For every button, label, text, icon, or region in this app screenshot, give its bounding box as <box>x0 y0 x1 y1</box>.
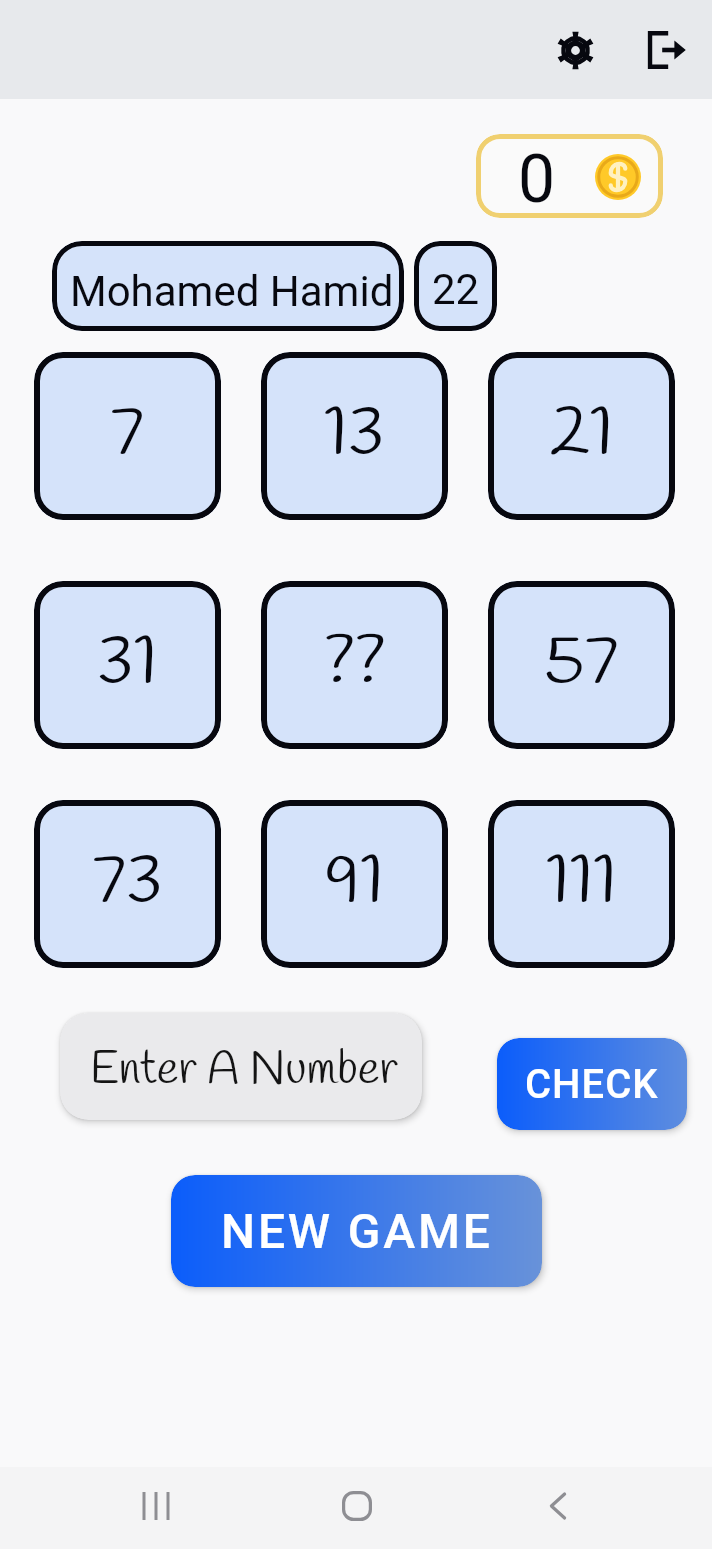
button[interactable]: Back <box>516 1464 600 1548</box>
button[interactable]: 21 <box>488 352 675 520</box>
staticText: ?? <box>324 618 386 711</box>
button[interactable]: 31 <box>34 581 221 749</box>
staticText: 13 <box>324 389 385 482</box>
button[interactable]: Enter A Number <box>60 1013 422 1120</box>
staticText: 7 <box>110 389 145 482</box>
staticText: 0 <box>518 141 556 218</box>
button[interactable]: NEW GAME <box>171 1175 542 1287</box>
button[interactable]: ?? <box>261 581 448 749</box>
button[interactable]: Settings <box>539 14 611 86</box>
button[interactable]: Recents <box>114 1464 198 1548</box>
button[interactable]: Log out <box>630 14 702 86</box>
button[interactable]: 13 <box>261 352 448 520</box>
staticText: Enter A Number <box>90 1040 398 1101</box>
staticText: NEW GAME <box>221 1203 493 1259</box>
staticText: CHECK <box>525 1061 659 1108</box>
staticText: 57 <box>544 618 619 711</box>
button[interactable]: 73 <box>34 800 221 968</box>
button[interactable]: 111 <box>488 800 675 968</box>
button[interactable]: Mohamed Hamid <box>52 241 404 331</box>
button[interactable]: Home <box>315 1464 399 1548</box>
button[interactable]: 7 <box>34 352 221 520</box>
staticText: 21 <box>550 389 614 482</box>
staticText: 73 <box>92 837 163 930</box>
button[interactable]: CHECK <box>497 1038 687 1130</box>
staticText: 22 <box>432 265 480 314</box>
button[interactable]: 91 <box>261 800 448 968</box>
staticText: 111 <box>546 837 617 930</box>
button[interactable]: 0 <box>476 134 663 218</box>
button[interactable]: 22 <box>414 241 497 331</box>
staticText: 31 <box>97 618 158 711</box>
button[interactable]: 57 <box>488 581 675 749</box>
staticText: 91 <box>325 837 384 930</box>
staticText: Mohamed Hamid <box>70 267 394 316</box>
